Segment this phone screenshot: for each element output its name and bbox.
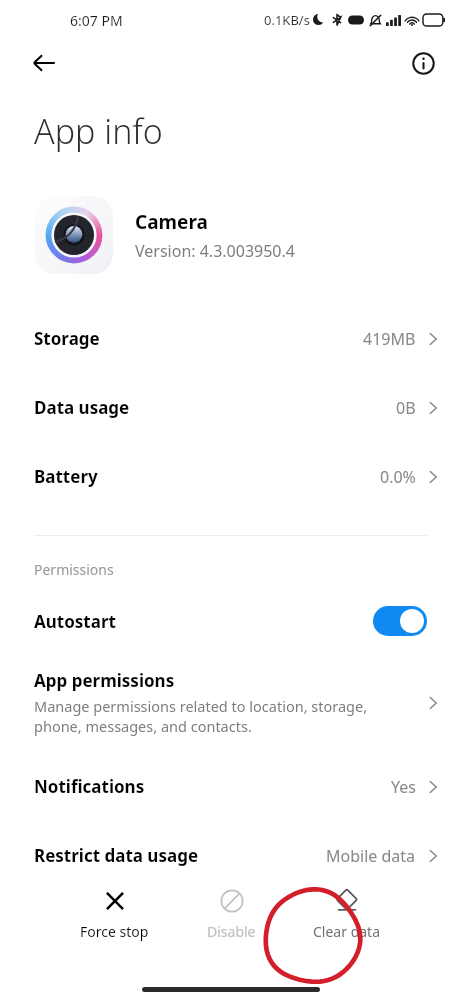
staticText: Permissions [34,560,114,579]
staticText: Restrict data usage [34,844,199,867]
staticText: Data usage [34,396,130,419]
button[interactable]: App details info [401,41,445,85]
button[interactable]: App permissions [0,663,461,742]
staticText: App permissions [34,669,175,692]
staticText: 0B [396,397,416,419]
staticText: App info [34,108,163,154]
staticText: Disable [207,922,256,941]
button[interactable]: Back [22,41,66,85]
staticText: Yes [391,776,416,798]
staticText: Storage [34,327,100,350]
button[interactable]: Clear data [307,884,387,945]
staticText: Manage permissions related to location, … [34,696,368,736]
button[interactable]: Storage [0,304,461,373]
staticText: Battery [34,465,98,488]
staticText: Mobile data [326,845,416,867]
staticText: Autostart [34,610,116,633]
staticText: 0.1KB/s [264,11,310,29]
button[interactable]: Restrict data usage [0,821,461,890]
staticText: 0.0% [380,466,416,488]
staticText: Camera [135,209,208,235]
staticText: 419MB [363,328,416,350]
button[interactable]: Battery [0,442,461,511]
button[interactable]: Notifications [0,752,461,821]
button[interactable]: Force stop [74,884,155,945]
staticText: Clear data [313,922,381,941]
staticText: Notifications [34,775,145,798]
button[interactable]: Data usage [0,373,461,442]
staticText: Version: 4.3.003950.4 [135,240,295,262]
staticText: Force stop [80,922,149,941]
staticText: 6:07 PM [70,11,123,30]
button[interactable]: Autostart [0,595,461,647]
button[interactable]: Disable [201,884,262,945]
